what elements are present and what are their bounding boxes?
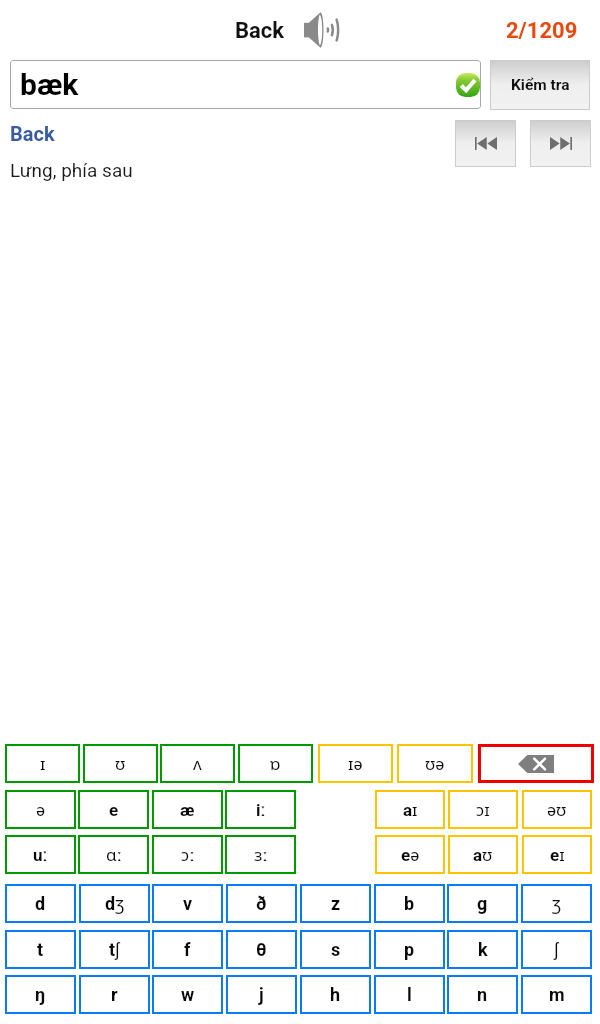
- button[interactable]: Backspace: [478, 744, 594, 783]
- staticText: aʊ: [473, 843, 493, 866]
- button[interactable]: ʊə: [397, 744, 473, 783]
- button[interactable]: Back: [10, 122, 55, 145]
- button[interactable]: j: [226, 975, 297, 1014]
- button[interactable]: tʃ: [79, 930, 150, 969]
- button[interactable]: ɜː: [225, 835, 296, 874]
- button[interactable]: b: [374, 884, 445, 923]
- staticText: uː: [33, 843, 48, 866]
- button[interactable]: ʃ: [521, 930, 592, 969]
- staticText: r: [111, 984, 118, 1005]
- button[interactable]: iː: [225, 790, 296, 829]
- button[interactable]: r: [79, 975, 150, 1014]
- button[interactable]: z: [300, 884, 371, 923]
- staticText: Back: [235, 18, 285, 44]
- staticText: h: [330, 984, 341, 1005]
- staticText: m: [549, 984, 565, 1005]
- button[interactable]: m: [521, 975, 592, 1014]
- staticText: l: [407, 984, 412, 1005]
- button[interactable]: æ: [152, 790, 223, 829]
- button[interactable]: g: [447, 884, 518, 923]
- button[interactable]: d: [5, 884, 76, 923]
- button[interactable]: n: [447, 975, 518, 1014]
- button[interactable]: k: [447, 930, 518, 969]
- staticText: Back: [10, 122, 55, 145]
- staticText: ɪə: [348, 752, 363, 775]
- staticText: ʒ: [552, 891, 561, 916]
- staticText: ɔɪ: [476, 798, 490, 821]
- button[interactable]: Next: [530, 120, 591, 167]
- staticText: ə: [36, 800, 45, 820]
- staticText: ɒ: [270, 752, 281, 775]
- button[interactable]: aʊ: [448, 835, 518, 874]
- button[interactable]: Play pronunciation: [304, 12, 337, 48]
- staticText: ʃ: [554, 937, 559, 962]
- button[interactable]: ɔː: [152, 835, 223, 874]
- staticText: ʌ: [193, 752, 202, 775]
- button[interactable]: Back: [235, 18, 285, 44]
- staticText: Lưng, phía sau: [10, 159, 133, 181]
- button[interactable]: f: [152, 930, 223, 969]
- staticText: iː: [256, 798, 266, 821]
- staticText: ɑː: [106, 843, 122, 866]
- staticText: s: [331, 939, 341, 960]
- button[interactable]: ɔɪ: [448, 790, 518, 829]
- staticText: ð: [256, 893, 267, 914]
- button[interactable]: t: [5, 930, 76, 969]
- button[interactable]: ɑː: [78, 835, 149, 874]
- staticText: θ: [256, 939, 267, 960]
- staticText: p: [404, 939, 415, 960]
- staticText: bæk: [20, 67, 79, 102]
- staticText: ɪ: [40, 752, 46, 775]
- button[interactable]: aɪ: [375, 790, 445, 829]
- staticText: w: [181, 984, 195, 1005]
- staticText: ʊ: [115, 752, 126, 775]
- staticText: z: [331, 893, 341, 914]
- button[interactable]: ŋ: [5, 975, 76, 1014]
- button[interactable]: Kiểm tra: [490, 60, 590, 110]
- staticText: n: [477, 984, 488, 1005]
- staticText: k: [478, 939, 488, 960]
- staticText: b: [404, 893, 415, 914]
- button[interactable]: ʊ: [83, 744, 158, 783]
- staticText: Kiểm tra: [511, 76, 570, 94]
- staticText: əʊ: [547, 798, 567, 821]
- button[interactable]: s: [300, 930, 371, 969]
- staticText: ŋ: [35, 984, 46, 1005]
- staticText: ɜː: [254, 843, 268, 866]
- staticText: ɔː: [181, 843, 195, 866]
- button[interactable]: e: [78, 790, 149, 829]
- staticText: æ: [180, 800, 195, 820]
- button[interactable]: ʌ: [160, 744, 235, 783]
- staticText: g: [477, 893, 488, 914]
- button[interactable]: ð: [226, 884, 297, 923]
- staticText: d: [35, 893, 46, 914]
- staticText: j: [259, 984, 264, 1005]
- staticText: eɪ: [550, 843, 565, 866]
- staticText: f: [184, 939, 191, 960]
- button[interactable]: v: [152, 884, 223, 923]
- button[interactable]: p: [374, 930, 445, 969]
- staticText: aɪ: [403, 798, 418, 821]
- button[interactable]: dʒ: [79, 884, 150, 923]
- button[interactable]: eə: [375, 835, 445, 874]
- staticText: eə: [401, 845, 420, 865]
- button[interactable]: uː: [5, 835, 76, 874]
- button[interactable]: ə: [5, 790, 76, 829]
- button[interactable]: θ: [226, 930, 297, 969]
- button[interactable]: ɪ: [5, 744, 80, 783]
- button[interactable]: w: [152, 975, 223, 1014]
- staticText: e: [109, 800, 119, 820]
- staticText: v: [183, 893, 193, 914]
- button[interactable]: l: [374, 975, 445, 1014]
- button[interactable]: ɒ: [238, 744, 313, 783]
- staticText: dʒ: [105, 891, 125, 916]
- staticText: ʊə: [425, 752, 445, 775]
- button[interactable]: ʒ: [521, 884, 592, 923]
- button[interactable]: h: [300, 975, 371, 1014]
- button[interactable]: bæk: [10, 60, 481, 109]
- button[interactable]: əʊ: [522, 790, 592, 829]
- button[interactable]: ɪə: [318, 744, 393, 783]
- staticText: tʃ: [109, 937, 120, 962]
- button[interactable]: eɪ: [522, 835, 592, 874]
- button[interactable]: Previous: [455, 120, 516, 167]
